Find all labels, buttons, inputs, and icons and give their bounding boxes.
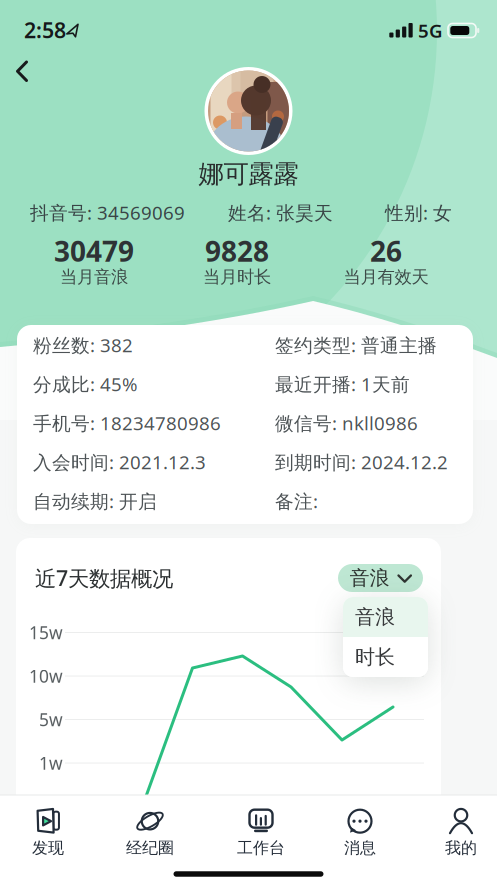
staticText: 粉丝数: 382 [33,333,133,357]
staticText: 性别: 女 [385,200,452,225]
staticText: 微信号: nkll0986 [275,411,418,435]
staticText: 消息 [344,838,376,858]
staticText: 发现 [32,838,64,858]
button[interactable]: 音浪 [343,597,428,637]
button[interactable]: Back [6,51,46,91]
staticText: 5G [418,18,443,43]
staticText: 15w [29,621,63,644]
staticText: 工作台 [237,838,285,858]
staticText: 娜可露露 [198,158,298,189]
staticText: 姓名: 张昊天 [228,200,333,225]
staticText: 当月音浪 [60,266,128,288]
staticText: 2:58 [24,16,66,44]
button[interactable]: 音浪 [338,564,423,592]
staticText: 近7天数据概况 [35,564,173,592]
staticText: 26 [370,232,402,270]
button[interactable]: 时长 [343,637,428,677]
staticText: 1w [39,751,63,774]
button[interactable]: 发现 [6,808,90,858]
staticText: 签约类型: 普通主播 [275,333,437,357]
staticText: 9828 [205,232,269,270]
staticText: 入会时间: 2021.12.3 [33,450,206,474]
button[interactable]: 我的 [419,808,497,858]
staticText: 当月时长 [203,266,271,288]
staticText: 经纪圈 [126,838,174,858]
button[interactable]: 工作台 [219,808,303,858]
staticText: 抖音号: 34569069 [30,200,185,225]
staticText: 5w [39,708,63,731]
button[interactable]: 消息 [318,808,402,858]
staticText: 到期时间: 2024.12.2 [275,450,448,474]
staticText: 30479 [54,232,134,270]
staticText: 我的 [445,838,477,858]
staticText: 最近开播: 1天前 [275,372,410,396]
staticText: 音浪 [355,605,395,629]
staticText: 当月有效天 [343,266,428,288]
staticText: 备注: [275,489,318,513]
staticText: 分成比: 45% [33,372,138,396]
staticText: 自动续期: 开启 [33,489,157,513]
staticText: 音浪 [349,566,389,590]
staticText: 10w [29,664,63,687]
staticText: 时长 [355,645,395,669]
button[interactable]: 经纪圈 [108,808,192,858]
staticText: 手机号: 18234780986 [33,411,221,435]
